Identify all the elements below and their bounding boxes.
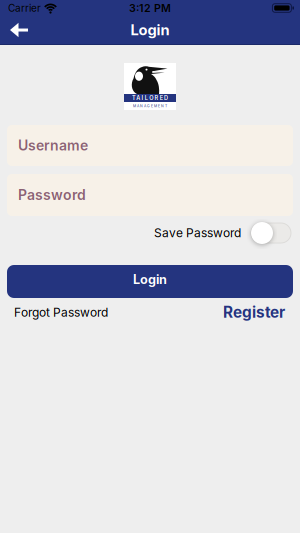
button[interactable]: Login	[7, 265, 293, 298]
staticText: TAILORED	[132, 95, 168, 101]
staticText: Password	[18, 186, 86, 203]
staticText: Carrier	[8, 2, 41, 14]
button[interactable]	[251, 222, 291, 244]
staticText: Save Password	[154, 226, 241, 240]
staticText: 3:12 PM	[129, 1, 171, 14]
staticText: Username	[18, 137, 88, 154]
button[interactable]	[6, 18, 36, 42]
staticText: M A N A G E M E N T	[133, 104, 167, 108]
button[interactable]: Register	[223, 303, 285, 322]
button[interactable]: Password	[7, 174, 293, 216]
staticText: Forgot Password	[14, 305, 108, 319]
staticText: Login	[133, 272, 167, 287]
button[interactable]: Forgot Password	[14, 305, 108, 319]
button[interactable]: Username	[7, 125, 293, 166]
staticText: Register	[223, 303, 285, 322]
staticText: Login	[130, 21, 169, 39]
